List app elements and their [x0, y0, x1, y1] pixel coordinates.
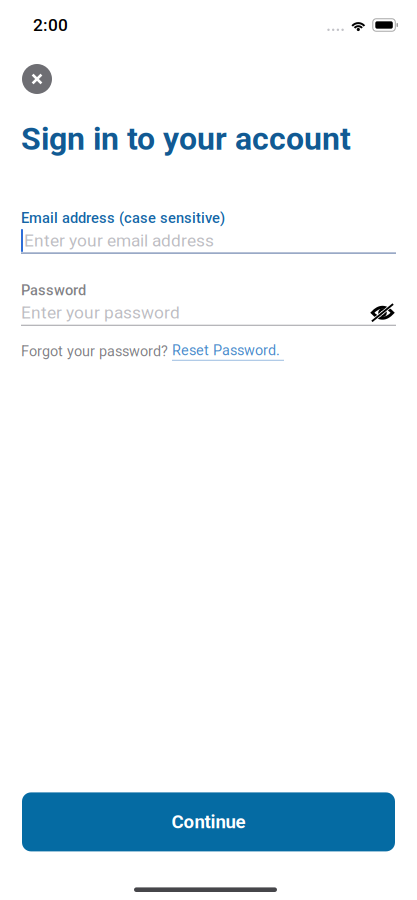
- button[interactable]: Show password: [369, 302, 396, 324]
- staticText: Reset Password.: [172, 342, 280, 359]
- staticText: Sign in to your account: [21, 120, 351, 157]
- staticText: Email address (case sensitive): [21, 209, 225, 227]
- staticText: Enter your email address: [24, 230, 214, 251]
- staticText: 2:00: [33, 15, 68, 35]
- staticText: Enter your password: [21, 302, 180, 323]
- staticText: Password: [21, 282, 86, 299]
- button[interactable]: Reset Password.: [172, 342, 284, 361]
- button[interactable]: Continue: [22, 792, 395, 851]
- button[interactable]: Close: [15, 57, 59, 101]
- staticText: Continue: [171, 811, 245, 833]
- staticText: Forgot your password?: [21, 343, 172, 360]
